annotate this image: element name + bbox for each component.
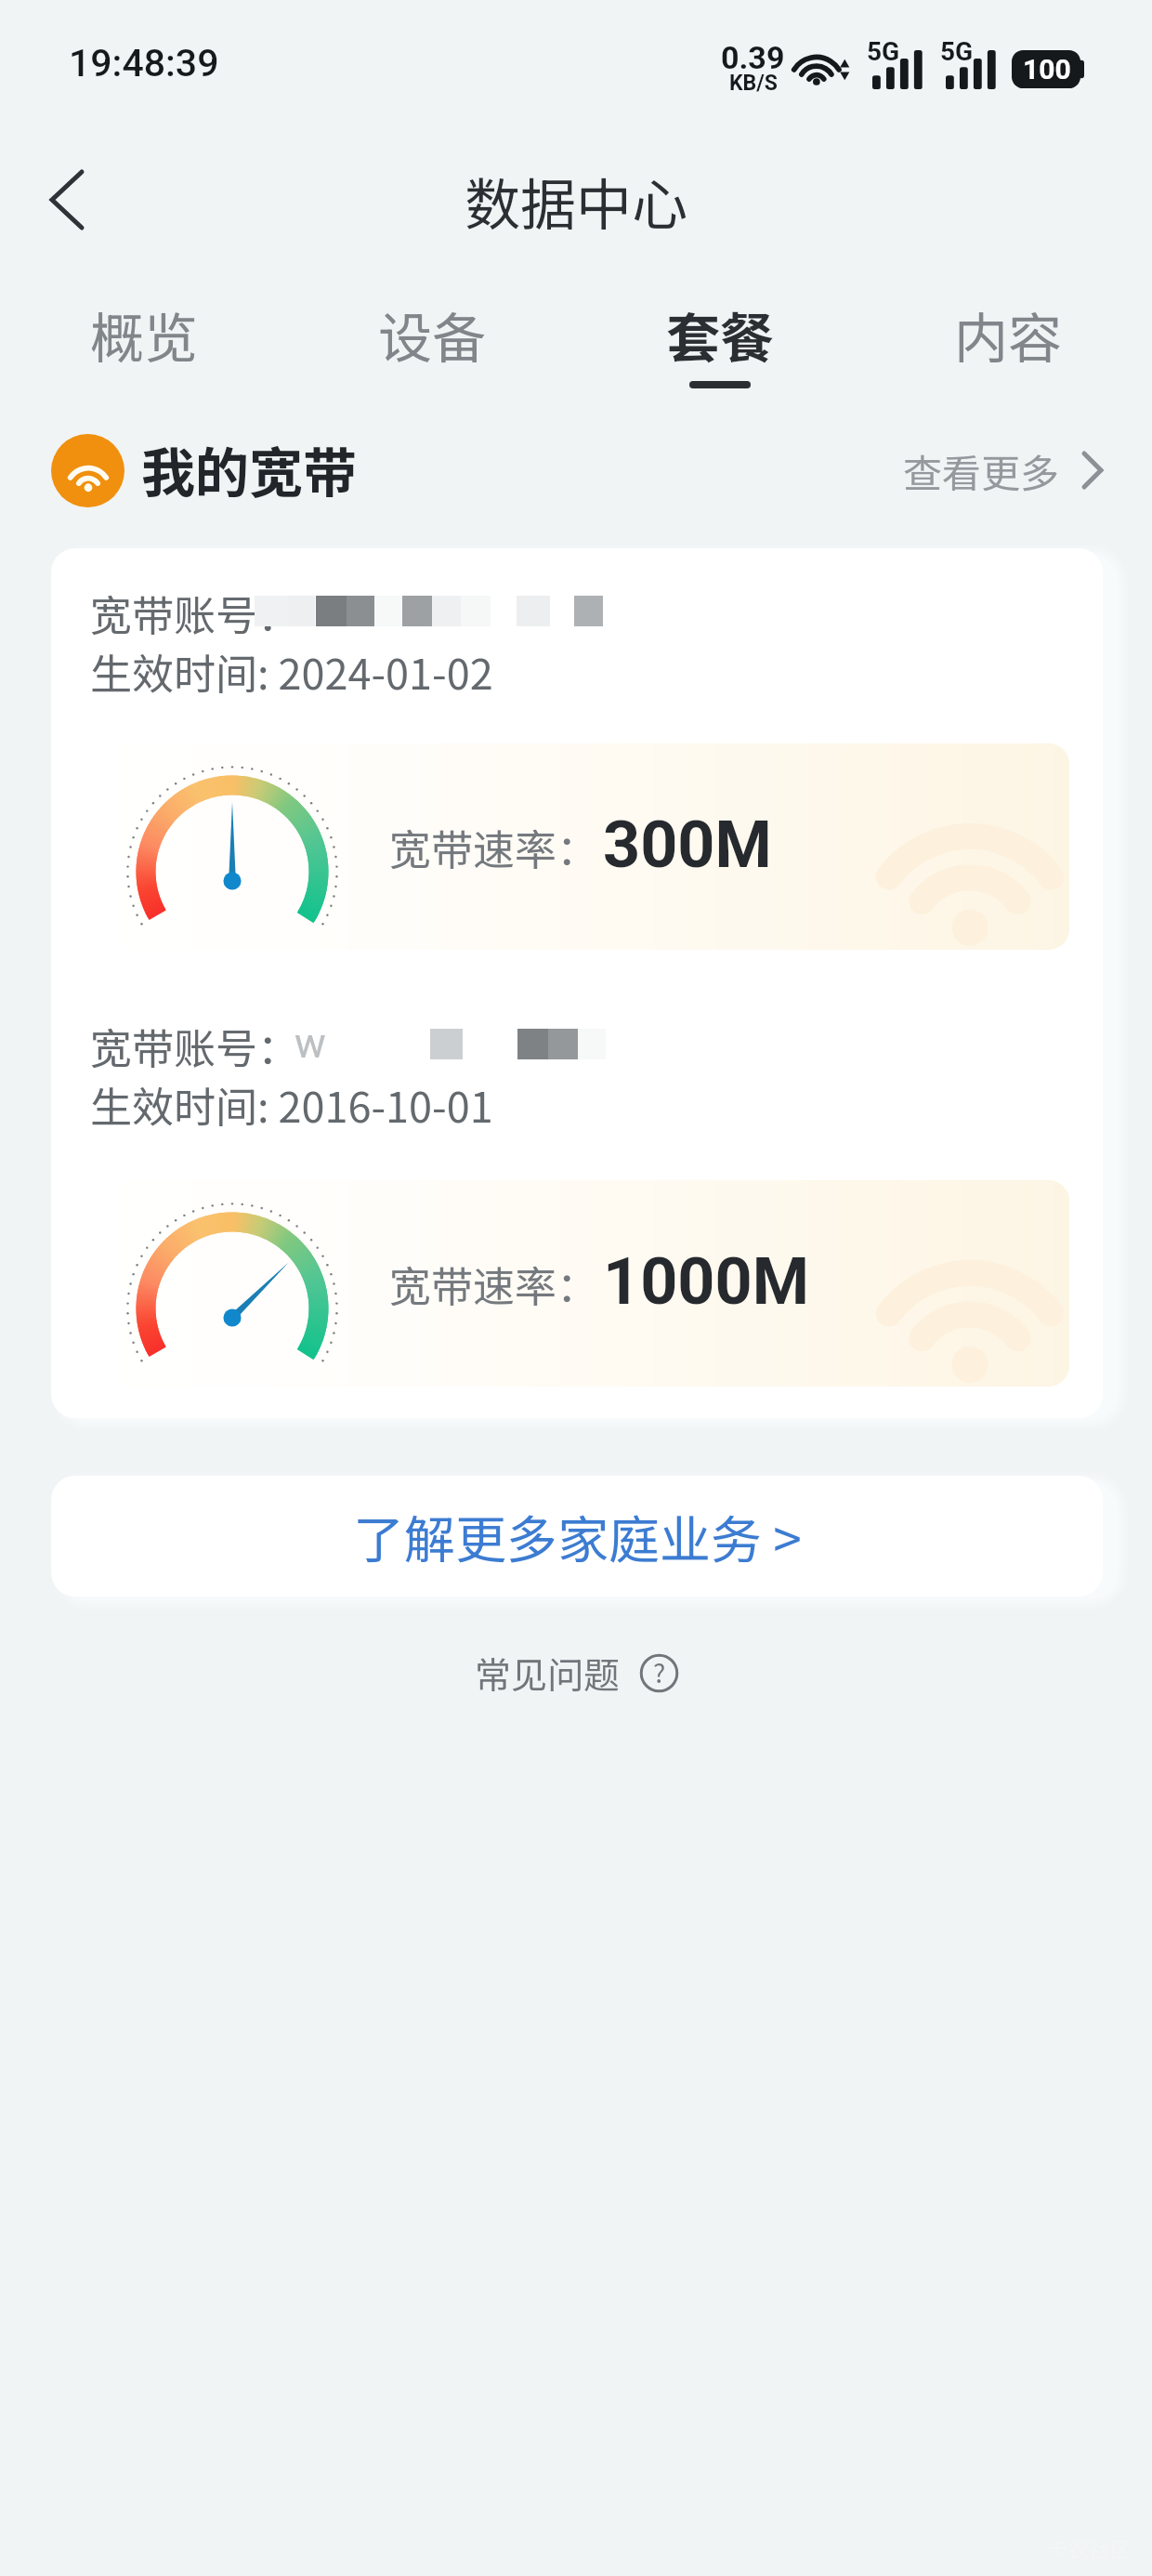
button[interactable]: 了解更多家庭业务 > [51, 1476, 1103, 1597]
button[interactable]: Back [22, 158, 111, 242]
staticText: 生效时间: 2016-10-01 [90, 1074, 493, 1135]
staticText: 生效时间: 2024-01-02 [90, 641, 493, 702]
staticText: 数据中心 [465, 160, 687, 241]
staticText: 宽带速率： [389, 817, 599, 877]
staticText: 5G [940, 36, 974, 67]
staticText: 我的宽带 [141, 430, 358, 508]
staticText: 设备 [378, 296, 487, 374]
staticText: 100 [1023, 53, 1071, 85]
button[interactable]: 概览 [0, 296, 288, 407]
staticText: 常见问题 [475, 1647, 621, 1699]
staticText: 300M [603, 807, 772, 883]
staticText: ? [653, 1653, 666, 1691]
staticText: 概览 [90, 296, 199, 374]
button[interactable]: 我的宽带 [51, 429, 358, 511]
staticText: 查看更多 [903, 442, 1060, 499]
button[interactable]: 内容 [864, 296, 1152, 407]
button[interactable]: 查看更多 [884, 429, 1122, 511]
staticText: 0.39 [721, 39, 785, 76]
staticText: w [295, 1019, 326, 1068]
staticText: 了解更多家庭业务 > [353, 1499, 802, 1573]
button[interactable]: 设备 [288, 296, 576, 407]
staticText: 19:48:39 [69, 41, 219, 85]
button[interactable]: 常见问题 [451, 1637, 702, 1708]
staticText: 宽带速率： [389, 1254, 599, 1314]
staticText: 宽带账号： [90, 583, 300, 643]
staticText: 5G [867, 36, 900, 67]
staticText: 宽带账号： [90, 1016, 300, 1076]
staticText: 1000M [603, 1243, 809, 1320]
button[interactable]: 套餐 [576, 296, 864, 407]
staticText: 内容 [954, 296, 1063, 374]
staticText: KB/S [729, 71, 778, 96]
staticText: 套餐 [666, 296, 775, 374]
